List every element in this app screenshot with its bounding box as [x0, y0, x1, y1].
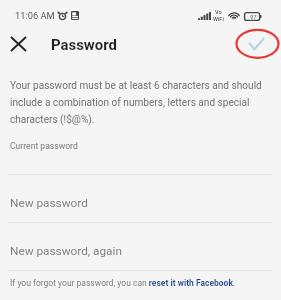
button[interactable]: Current password [0, 134, 281, 175]
button[interactable]: New password [0, 175, 281, 223]
staticText: Your password must be at least 6 charact… [10, 80, 262, 126]
button[interactable]: If you forgot your password, you can res… [10, 278, 236, 288]
staticText: New password, again [10, 244, 122, 258]
staticText: 11:06 AM [15, 10, 55, 21]
button[interactable]: Close [4, 30, 32, 58]
staticText: 97 [250, 13, 257, 20]
staticText: New password [10, 196, 88, 210]
staticText: Vo [215, 9, 222, 16]
button[interactable]: Save password [242, 30, 270, 58]
staticText: Password [51, 36, 117, 53]
staticText: Current password [10, 141, 78, 151]
button[interactable]: New password, again [0, 223, 281, 271]
staticText: WiFi [213, 16, 224, 23]
